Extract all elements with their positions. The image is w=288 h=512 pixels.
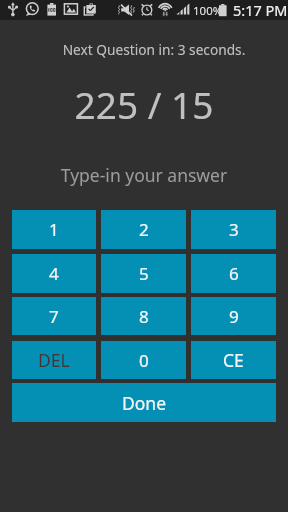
button[interactable]: Digit 9 — [191, 297, 276, 335]
staticText: CE — [223, 348, 244, 372]
button[interactable]: Digit 6 — [191, 254, 276, 293]
button[interactable]: Clear entry — [191, 341, 276, 379]
staticText: 7 — [49, 305, 59, 328]
staticText: 5:17 PM — [233, 0, 288, 20]
button[interactable]: Digit 7 — [12, 297, 96, 335]
staticText: 6 — [229, 262, 239, 285]
button[interactable]: Digit 5 — [101, 254, 186, 293]
button[interactable]: Delete last digit — [12, 341, 96, 379]
staticText: Type-in your answer — [0, 163, 288, 187]
staticText: Done — [122, 391, 167, 415]
button[interactable]: Digit 4 — [12, 254, 96, 293]
staticText: 5 — [139, 262, 149, 285]
staticText: DEL — [38, 348, 70, 372]
button[interactable]: Digit 8 — [101, 297, 186, 335]
staticText: 4 — [49, 262, 59, 285]
staticText: 8 — [139, 305, 149, 328]
button[interactable]: Digit 0 — [101, 341, 186, 379]
staticText: 2 — [139, 218, 149, 241]
staticText: 225 / 15 — [0, 79, 288, 129]
staticText: 0 — [139, 349, 149, 372]
button[interactable]: Done — [12, 383, 276, 422]
button[interactable]: Digit 3 — [191, 210, 276, 249]
button[interactable]: Digit 1 — [12, 210, 96, 249]
staticText: 1 — [49, 218, 59, 241]
button[interactable]: Digit 2 — [101, 210, 186, 249]
staticText: 100% — [193, 3, 223, 19]
staticText: Next Question in: 3 seconds. — [20, 40, 288, 59]
staticText: 9 — [229, 305, 239, 328]
staticText: 3 — [229, 218, 239, 241]
